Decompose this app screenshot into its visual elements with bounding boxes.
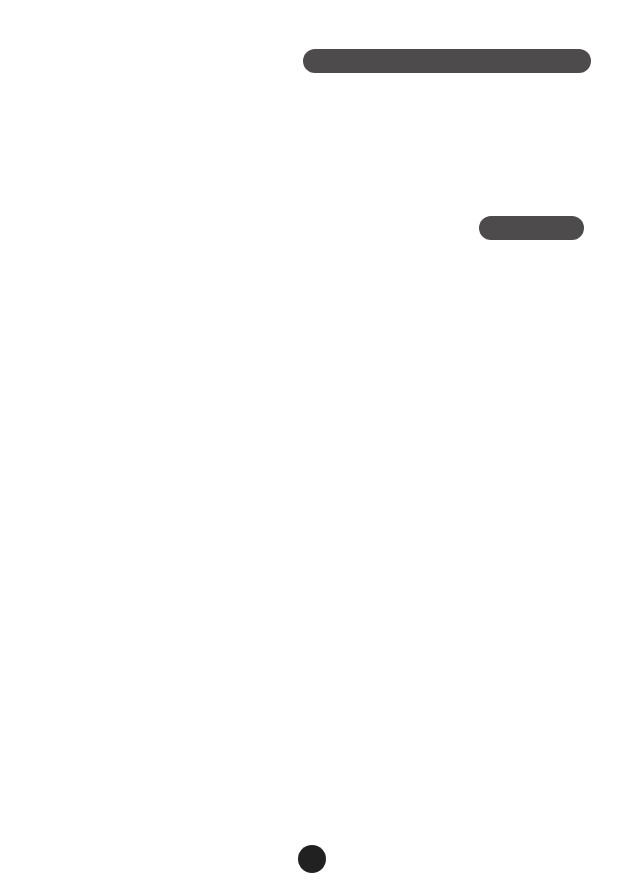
button[interactable]: Filter [479, 216, 584, 240]
button[interactable]: Search [303, 49, 591, 73]
button[interactable]: Add [298, 845, 326, 873]
